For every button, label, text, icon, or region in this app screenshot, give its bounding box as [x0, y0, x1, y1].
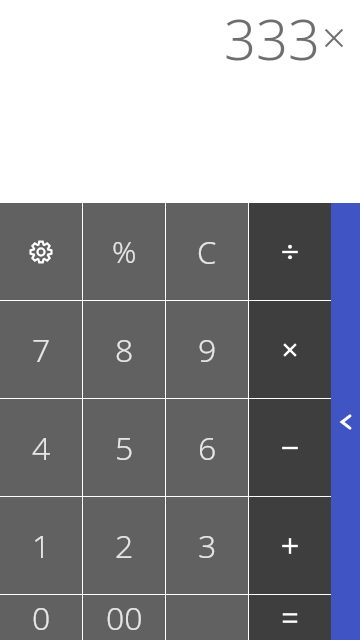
button[interactable]: 0	[0, 595, 82, 640]
staticText: %	[112, 231, 137, 272]
button[interactable]: 5	[83, 399, 165, 496]
staticText: 3	[198, 524, 217, 568]
button[interactable]: Plus	[249, 497, 331, 594]
button[interactable]: 1	[0, 497, 82, 594]
button[interactable]: Multiply	[249, 301, 331, 398]
button[interactable]: C	[166, 203, 248, 300]
button[interactable]: Settings	[0, 203, 82, 300]
button[interactable]: 00	[83, 595, 165, 640]
button[interactable]: Equals	[249, 595, 331, 640]
staticText: 1	[32, 524, 51, 568]
staticText: 6	[198, 426, 217, 470]
staticText: 9	[198, 328, 217, 372]
staticText: 00	[106, 596, 143, 640]
staticText: C	[197, 231, 217, 273]
staticText: 7	[32, 328, 51, 372]
button[interactable]: 4	[0, 399, 82, 496]
button[interactable]: 7	[0, 301, 82, 398]
staticText: 0	[32, 596, 51, 640]
staticText: 5	[115, 426, 134, 470]
button[interactable]: %	[83, 203, 165, 300]
button[interactable]: 3	[166, 497, 248, 594]
button[interactable]: 6	[166, 399, 248, 496]
staticText: 333	[224, 0, 320, 76]
button[interactable]: Backspace	[331, 203, 360, 640]
staticText: 8	[115, 328, 134, 372]
button[interactable]: 9	[166, 301, 248, 398]
button[interactable]: 8	[83, 301, 165, 398]
staticText: 4	[32, 426, 51, 470]
button[interactable]: 2	[83, 497, 165, 594]
button[interactable]: Minus	[249, 399, 331, 496]
staticText: 2	[115, 524, 134, 568]
staticText: ×	[322, 8, 346, 65]
button[interactable]: Divide	[249, 203, 331, 300]
